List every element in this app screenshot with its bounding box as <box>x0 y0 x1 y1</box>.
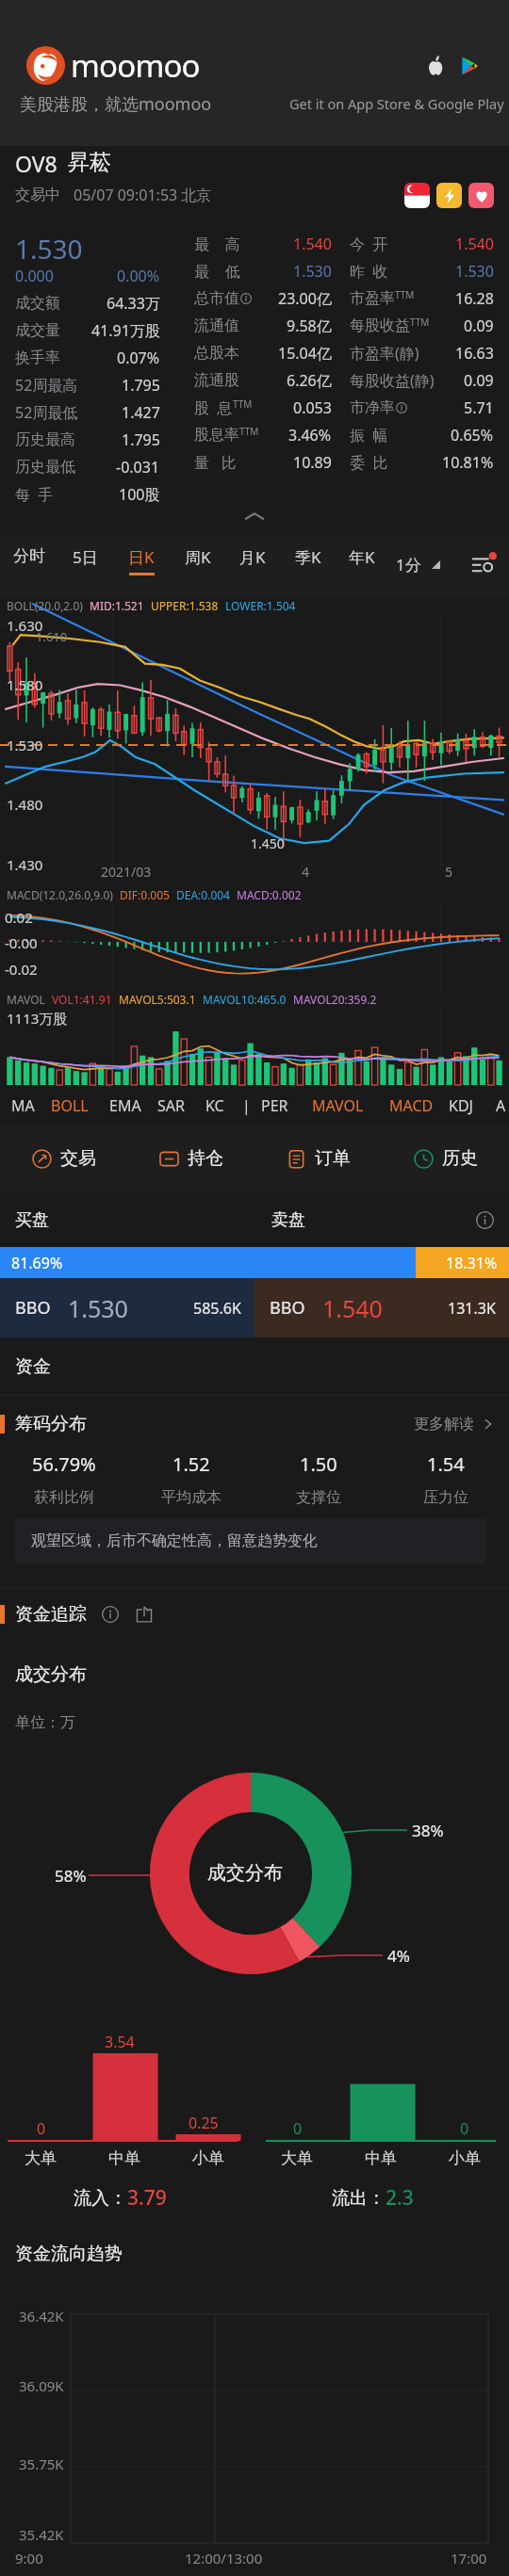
staticText: 流通股 <box>194 371 239 390</box>
staticText: 日K <box>128 546 155 568</box>
staticText: 年K <box>349 546 375 568</box>
button[interactable]: SAR <box>156 1086 187 1125</box>
staticText: 5日 <box>73 546 98 568</box>
staticText: 1.530 <box>15 231 83 263</box>
button[interactable]: 资金 <box>0 1337 509 1395</box>
staticText: SAR <box>157 1095 185 1116</box>
button[interactable]: BBO <box>15 1278 241 1337</box>
staticText: 每 手 <box>15 484 54 505</box>
button[interactable]: MA <box>9 1086 37 1125</box>
staticText: 23.00亿 <box>278 288 332 309</box>
staticText: 1.540 <box>293 234 332 254</box>
button[interactable]: BBO <box>270 1278 496 1337</box>
button[interactable]: OV8 <box>15 149 111 175</box>
button[interactable]: 持仓 <box>127 1125 254 1192</box>
button[interactable]: 月K <box>226 543 279 586</box>
button[interactable]: 历史 <box>382 1125 509 1192</box>
button[interactable]: 更多解读 <box>414 1415 494 1434</box>
staticText: 41.91万股 <box>91 320 160 341</box>
button[interactable]: MACD <box>387 1086 435 1125</box>
staticText: | <box>242 1095 251 1116</box>
staticText: TTM <box>410 316 430 329</box>
staticText: 10.81% <box>442 452 494 473</box>
button[interactable]: 季K <box>282 543 335 586</box>
staticText: 历史 <box>442 1147 478 1170</box>
button[interactable]: 年K <box>336 543 388 586</box>
button[interactable]: Level 2 quotes <box>436 183 462 208</box>
button[interactable]: Info <box>100 1604 121 1625</box>
staticText: 历史最高 <box>15 430 75 449</box>
staticText: 0.053 <box>293 397 332 418</box>
button[interactable]: EMA <box>107 1086 143 1125</box>
button[interactable]: Chart settings <box>467 543 501 586</box>
button[interactable]: moomoo logo <box>0 0 509 146</box>
staticText: MAVOL <box>7 992 45 1007</box>
staticText: 100股 <box>119 484 160 505</box>
staticText: 最 低 <box>194 261 240 282</box>
button[interactable]: Share <box>134 1604 155 1625</box>
button[interactable]: KDJ <box>447 1086 475 1125</box>
staticText: 流出： <box>332 2187 386 2210</box>
staticText: 2.3 <box>386 2184 414 2211</box>
button[interactable]: | <box>240 1086 253 1125</box>
staticText: 资金追踪 <box>15 1603 87 1626</box>
button[interactable]: MAVOL <box>310 1086 366 1125</box>
staticText: TTM <box>395 288 415 301</box>
button[interactable]: 日K <box>115 543 168 586</box>
button[interactable]: Singapore market <box>404 183 430 208</box>
staticText: 量 比 <box>194 452 237 473</box>
staticText: BBO <box>270 1296 305 1320</box>
staticText: 获利比例 <box>34 1488 94 1507</box>
staticText: 58% <box>55 1865 87 1887</box>
staticText: 1.430 <box>7 855 43 874</box>
staticText: DIF:0.005 <box>120 887 170 902</box>
staticText: DEA:0.004 <box>176 887 230 902</box>
button[interactable]: PER <box>259 1086 290 1125</box>
staticText: 季K <box>295 546 321 568</box>
button[interactable]: 分时 <box>3 543 56 586</box>
other: Google Play <box>460 57 479 75</box>
staticText: 64.33万 <box>107 293 160 314</box>
staticText: 16.28 <box>455 288 494 309</box>
staticText: 昨 收 <box>350 261 388 282</box>
button[interactable]: 18.31% <box>416 1247 509 1278</box>
staticText: BOLL <box>51 1095 89 1116</box>
staticText: 最 高 <box>194 234 240 254</box>
staticText: -0.02 <box>5 960 38 979</box>
button[interactable]: A <box>494 1086 508 1125</box>
staticText: 9.58亿 <box>287 316 332 336</box>
staticText: 81.69% <box>11 1253 63 1273</box>
button[interactable]: 交易 <box>0 1125 127 1192</box>
staticText: KDJ <box>449 1095 473 1116</box>
staticText: 历史最低 <box>15 458 75 477</box>
staticText: Get it on App Store & Google Play <box>289 94 504 113</box>
staticText: 资金 <box>15 1355 51 1378</box>
staticText: 1.530 <box>7 736 43 754</box>
button[interactable]: 81.69% <box>0 1247 416 1278</box>
staticText: 52周最高 <box>15 375 78 396</box>
button[interactable]: Collapse <box>0 502 509 530</box>
button[interactable]: 订单 <box>254 1125 382 1192</box>
staticText: 月K <box>239 546 266 568</box>
button[interactable]: 5日 <box>58 543 111 586</box>
staticText: 05/07 09:01:53 北京 <box>74 185 212 205</box>
button[interactable]: Order book info <box>473 1208 496 1231</box>
staticText: LOWER:1.504 <box>225 598 296 613</box>
other: moomoo logo <box>26 46 65 85</box>
staticText: 4% <box>387 1945 410 1967</box>
staticText: 35.75K <box>19 2454 64 2473</box>
staticText: 16.63 <box>455 343 494 364</box>
staticText: 成交额 <box>15 294 60 313</box>
staticText: 昇菘 <box>68 149 111 175</box>
staticText: 单位：万 <box>15 1713 75 1732</box>
staticText: 成交分布 <box>15 1663 87 1686</box>
button[interactable]: 1分 <box>396 543 440 586</box>
button[interactable]: Add to watchlist <box>468 183 494 208</box>
staticText: 0.09 <box>464 316 494 336</box>
button[interactable]: BOLL <box>49 1086 90 1125</box>
staticText: 5 <box>445 863 453 881</box>
button[interactable]: 周K <box>172 543 224 586</box>
button[interactable]: KC <box>204 1086 226 1125</box>
staticText: 0.09 <box>464 370 494 391</box>
staticText: 2.3 <box>365 2082 386 2103</box>
